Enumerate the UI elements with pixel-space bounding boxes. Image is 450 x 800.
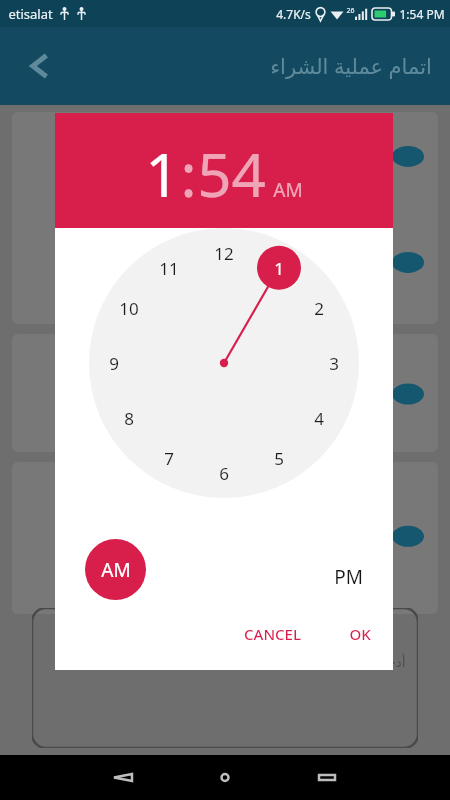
staticText: 26 <box>346 6 355 16</box>
staticText: 3 <box>329 352 339 375</box>
button[interactable]: 4 <box>302 406 336 430</box>
button[interactable]: Home <box>197 755 253 800</box>
button[interactable]: 1 <box>145 133 180 215</box>
button[interactable]: 2 <box>302 296 336 320</box>
staticText: AM <box>273 177 303 203</box>
button[interactable]: 11 <box>152 256 186 280</box>
staticText: 9 <box>109 352 119 375</box>
button[interactable]: AM <box>85 539 146 600</box>
button[interactable]: 1 <box>262 256 296 280</box>
staticText: اتمام عملية الشراء <box>270 52 432 81</box>
button[interactable]: OK <box>339 618 381 650</box>
staticText: 5 <box>274 447 284 470</box>
button[interactable]: 6 <box>207 461 241 485</box>
staticText: 12 <box>214 242 234 265</box>
button[interactable]: CANCEL <box>234 618 311 650</box>
button[interactable]: 9 <box>97 351 131 375</box>
staticText: AM <box>101 557 131 583</box>
staticText: OK <box>349 624 371 644</box>
button[interactable]: 5 <box>262 446 296 470</box>
staticText: 6 <box>219 462 229 485</box>
staticText: 4.7K/s <box>276 6 311 22</box>
staticText: 1 <box>274 257 284 280</box>
staticText: etisalat <box>8 5 53 23</box>
button[interactable]: 3 <box>317 351 351 375</box>
staticText: : <box>180 133 197 215</box>
button[interactable]: أدخل <box>32 608 418 748</box>
button[interactable]: 7 <box>152 446 186 470</box>
button[interactable]: 8 <box>112 406 146 430</box>
button[interactable]: PM <box>334 564 363 590</box>
staticText: PM <box>334 564 363 590</box>
button[interactable]: 12 <box>55 228 393 538</box>
button[interactable] <box>12 334 438 452</box>
button[interactable] <box>12 112 438 324</box>
staticText: CANCEL <box>244 624 301 644</box>
button[interactable]: Recents <box>299 755 355 800</box>
staticText: 11 <box>159 257 179 280</box>
button[interactable]: Back <box>20 46 60 86</box>
button[interactable]: Back <box>95 755 151 800</box>
staticText: 4 <box>314 407 324 430</box>
button[interactable]: 12 <box>207 241 241 265</box>
staticText: 2 <box>314 297 324 320</box>
button[interactable]: 54 <box>197 133 266 215</box>
button[interactable] <box>12 462 438 614</box>
staticText: 1:54 PM <box>399 6 445 22</box>
staticText: 7 <box>164 447 174 470</box>
staticText: أدخل <box>376 654 406 670</box>
staticText: 10 <box>119 297 139 320</box>
button[interactable]: 10 <box>112 296 146 320</box>
staticText: 8 <box>124 407 134 430</box>
